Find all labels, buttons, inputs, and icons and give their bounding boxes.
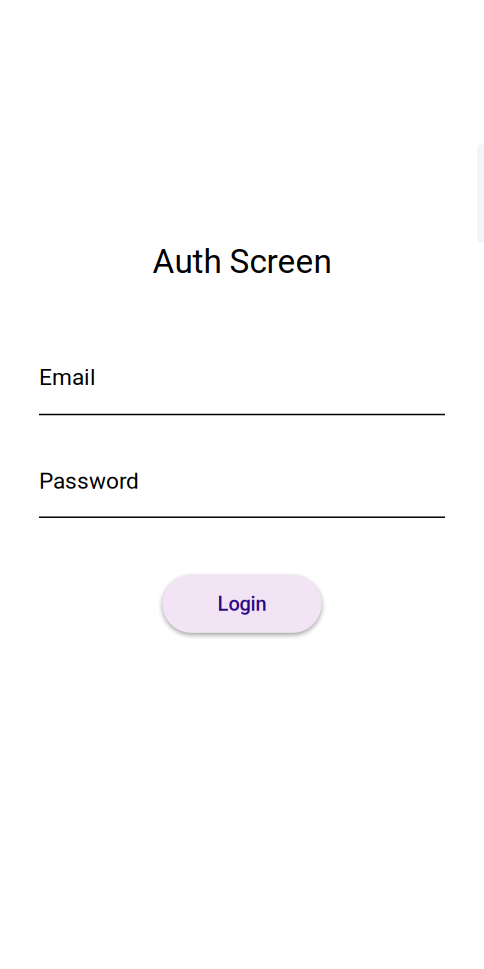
staticText: Email	[39, 364, 96, 391]
staticText: Auth Screen	[152, 242, 331, 281]
staticText: Password	[39, 468, 139, 494]
button[interactable]: Login	[162, 575, 321, 633]
staticText: Login	[217, 592, 266, 615]
